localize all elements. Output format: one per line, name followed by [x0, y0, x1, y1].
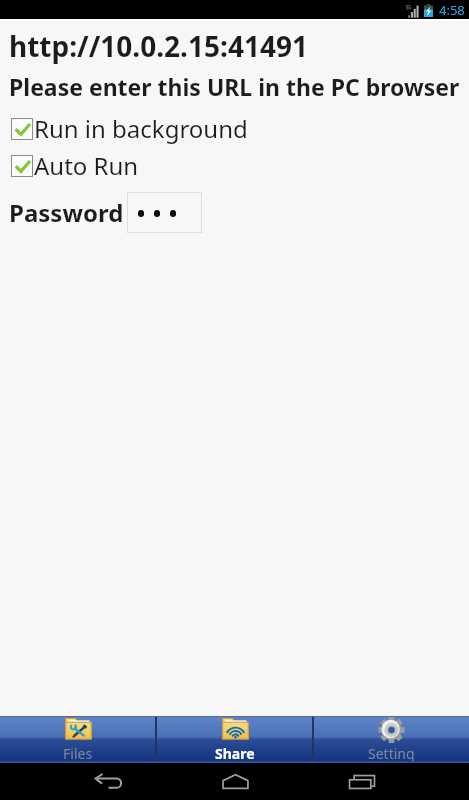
button[interactable]: Run in background	[0, 112, 469, 145]
staticText: Run in background	[34, 112, 248, 145]
button[interactable]: Back	[76, 763, 140, 800]
staticText: 4:58	[439, 1, 465, 19]
staticText: http://10.0.2.15:41491	[9, 27, 308, 65]
staticText: Password	[9, 196, 124, 229]
staticText: Auto Run	[34, 149, 139, 182]
button[interactable]: Share	[157, 716, 312, 763]
button[interactable]: Recent apps	[330, 763, 394, 800]
button[interactable]: Setting	[314, 716, 469, 763]
staticText: Files	[63, 744, 93, 763]
button[interactable]: Files	[0, 716, 155, 763]
button[interactable]	[127, 192, 202, 233]
staticText: Please enter this URL in the PC browser	[9, 71, 460, 102]
button[interactable]: Auto Run	[0, 149, 469, 182]
button[interactable]: Home	[203, 763, 267, 800]
staticText: Setting	[368, 744, 415, 763]
staticText: Share	[215, 744, 255, 763]
